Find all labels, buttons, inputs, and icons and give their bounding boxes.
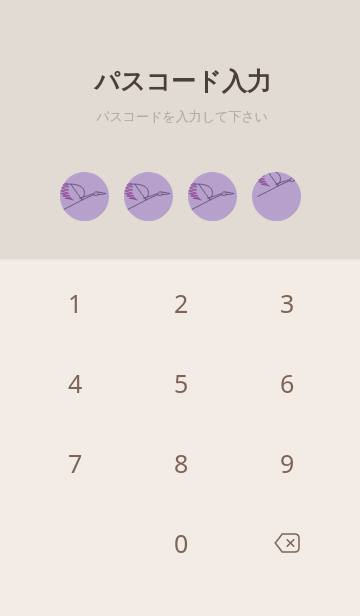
staticText: パスコード入力 xyxy=(3,66,360,97)
staticText: 2 xyxy=(174,286,189,320)
button[interactable]: 3 xyxy=(234,263,340,343)
button[interactable]: 7 xyxy=(22,423,128,503)
staticText: 9 xyxy=(280,446,295,480)
button[interactable]: 8 xyxy=(128,423,234,503)
staticText: 6 xyxy=(280,366,295,400)
button[interactable]: 6 xyxy=(234,343,340,423)
staticText: 4 xyxy=(68,366,83,400)
staticText: 8 xyxy=(174,446,189,480)
staticText: 5 xyxy=(174,366,189,400)
button[interactable]: 5 xyxy=(128,343,234,423)
staticText: 1 xyxy=(68,286,83,320)
staticText: 0 xyxy=(174,526,189,560)
button[interactable]: Backspace xyxy=(234,503,340,583)
button[interactable]: 9 xyxy=(234,423,340,503)
staticText: 7 xyxy=(68,446,83,480)
staticText: 3 xyxy=(280,286,295,320)
button[interactable]: 0 xyxy=(128,503,234,583)
other: Backspace xyxy=(270,526,304,560)
button[interactable]: 2 xyxy=(128,263,234,343)
staticText: パスコードを入力して下さい xyxy=(2,108,360,124)
button[interactable]: 1 xyxy=(22,263,128,343)
button[interactable]: 4 xyxy=(22,343,128,423)
